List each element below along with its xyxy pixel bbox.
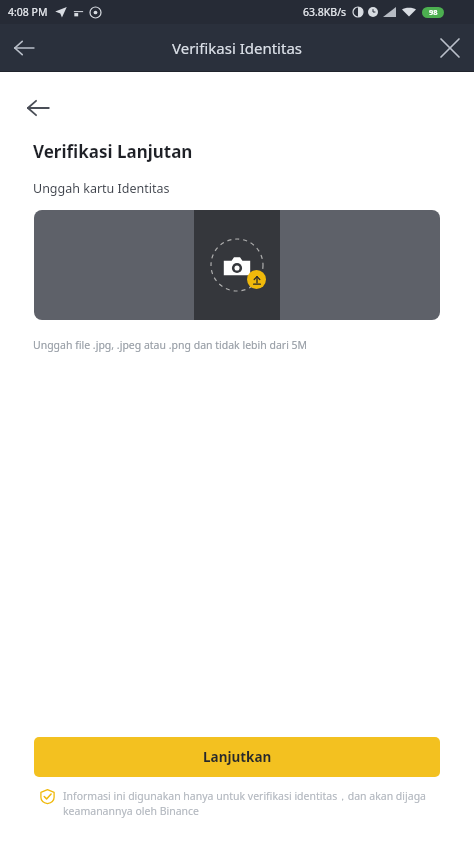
- staticText: Lanjutkan: [203, 748, 272, 766]
- staticText: Informasi ini digunakan hanya untuk veri…: [63, 789, 440, 818]
- button[interactable]: Back: [26, 90, 62, 126]
- staticText: 4:08 PM: [8, 5, 48, 19]
- staticText: Verifikasi Lanjutan: [33, 140, 193, 163]
- button[interactable]: Close: [426, 24, 474, 72]
- staticText: 98: [429, 7, 438, 17]
- staticText: Unggah kartu Identitas: [33, 180, 170, 197]
- staticText: Unggah file .jpg, .jpeg atau .png dan ti…: [33, 338, 308, 352]
- button[interactable]: Lanjutkan: [34, 737, 440, 777]
- staticText: 63.8KB/s: [303, 5, 347, 19]
- button[interactable]: Unggah kartu identitas: [34, 210, 440, 320]
- button[interactable]: Back: [0, 24, 48, 72]
- staticText: Verifikasi Identitas: [172, 38, 302, 58]
